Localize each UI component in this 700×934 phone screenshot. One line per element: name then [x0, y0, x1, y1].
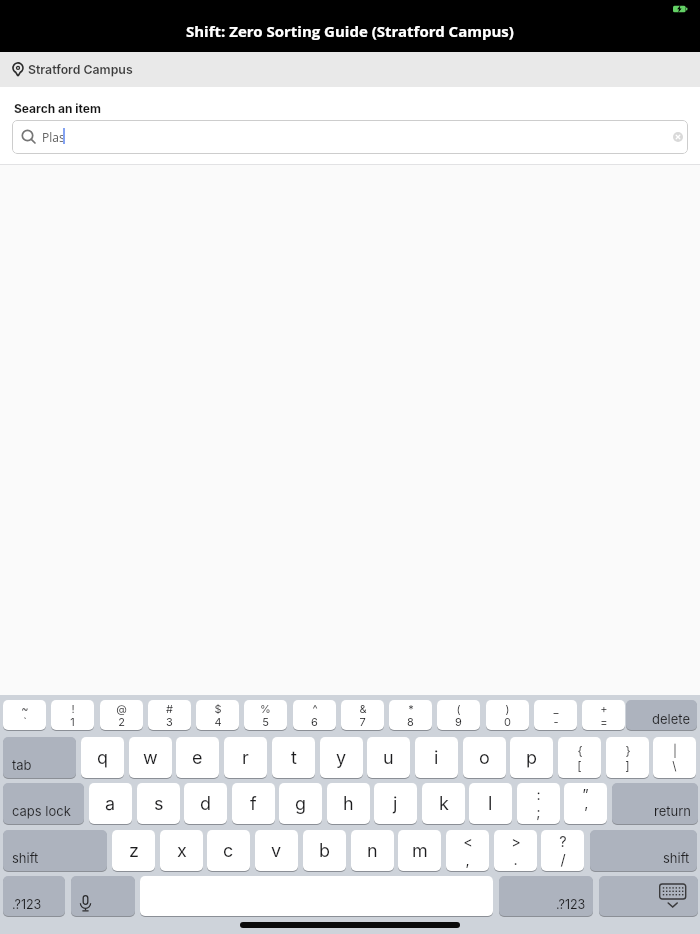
staticText: Plas	[42, 129, 65, 145]
staticText: /	[560, 851, 566, 869]
button[interactable]: u	[367, 737, 410, 778]
button[interactable]: k	[422, 783, 465, 824]
staticText: &	[359, 702, 367, 715]
button[interactable]: c	[207, 830, 250, 871]
staticText: shift	[12, 850, 39, 866]
button[interactable]: h	[327, 783, 370, 824]
staticText: 0	[504, 715, 511, 728]
button[interactable]: j	[374, 783, 417, 824]
button[interactable]: Plas	[12, 120, 688, 154]
staticText: v	[271, 840, 282, 862]
button[interactable]: |	[653, 737, 696, 778]
button[interactable]: ?	[541, 830, 584, 871]
button[interactable]: }	[606, 737, 649, 778]
button[interactable]: z	[112, 830, 155, 871]
button[interactable]: return	[612, 783, 698, 824]
button[interactable]: m	[398, 830, 441, 871]
button[interactable]: <	[446, 830, 489, 871]
button[interactable]: a	[89, 783, 132, 824]
staticText: *	[408, 702, 414, 715]
staticText: #	[166, 702, 173, 715]
button[interactable]: w	[129, 737, 172, 778]
button[interactable]: @	[100, 700, 143, 730]
staticText: -	[553, 715, 559, 728]
staticText: ;	[536, 804, 541, 822]
button[interactable]	[599, 876, 698, 916]
staticText: {	[577, 743, 583, 758]
button[interactable]: %	[244, 700, 287, 730]
button[interactable]: x	[160, 830, 203, 871]
button[interactable]: .?123	[499, 876, 593, 916]
button[interactable]: f	[232, 783, 275, 824]
staticText: z	[129, 840, 139, 862]
button[interactable]: caps lock	[3, 783, 84, 824]
staticText: ^	[312, 702, 318, 715]
button[interactable]: t	[272, 737, 315, 778]
button[interactable]: y	[320, 737, 363, 778]
button[interactable]: {	[558, 737, 601, 778]
button[interactable]: b	[303, 830, 346, 871]
staticText: j	[393, 793, 398, 815]
button[interactable]: q	[81, 737, 124, 778]
staticText: \	[672, 758, 677, 773]
staticText: ]	[625, 758, 630, 773]
staticText: y	[336, 747, 347, 769]
button[interactable]: .?123	[3, 876, 65, 916]
button[interactable]	[71, 876, 135, 916]
button[interactable]: ”	[564, 783, 607, 824]
staticText: d	[200, 793, 212, 815]
staticText: 6	[311, 715, 318, 728]
button[interactable]: delete	[626, 700, 697, 730]
button[interactable]: shift	[590, 830, 697, 871]
staticText: 5	[262, 715, 269, 728]
button[interactable]: v	[255, 830, 298, 871]
button[interactable]	[673, 132, 683, 142]
button[interactable]: )	[486, 700, 529, 730]
staticText: Stratford Campus	[28, 62, 133, 77]
staticText: u	[383, 747, 394, 769]
staticText: e	[192, 747, 203, 769]
button[interactable]: ^	[293, 700, 336, 730]
staticText: Search an item	[14, 101, 101, 116]
button[interactable]: n	[351, 830, 394, 871]
button[interactable]: :	[517, 783, 560, 824]
button[interactable]: Stratford Campus	[0, 52, 700, 87]
button[interactable]: !	[51, 700, 94, 730]
button[interactable]: _	[534, 700, 577, 730]
button[interactable]: (	[437, 700, 480, 730]
button[interactable]: o	[463, 737, 506, 778]
button[interactable]: >	[494, 830, 537, 871]
staticText: 2	[118, 715, 125, 728]
button[interactable]: &	[341, 700, 384, 730]
staticText: p	[526, 747, 538, 769]
staticText: 7	[359, 715, 366, 728]
button[interactable]: p	[510, 737, 553, 778]
staticText: +	[600, 702, 608, 715]
staticText: %	[260, 702, 271, 715]
staticText: o	[479, 747, 490, 769]
button[interactable]: *	[389, 700, 432, 730]
staticText: .	[513, 851, 518, 869]
staticText: c	[223, 840, 234, 862]
button[interactable]: s	[137, 783, 180, 824]
button[interactable]: i	[415, 737, 458, 778]
button[interactable]: +	[582, 700, 625, 730]
button[interactable]: l	[469, 783, 512, 824]
staticText: |	[673, 743, 677, 758]
staticText: `	[23, 715, 27, 728]
button[interactable]: tab	[3, 737, 76, 778]
button[interactable]: ~	[3, 700, 46, 730]
staticText: !	[71, 702, 75, 715]
button[interactable]: $	[196, 700, 239, 730]
staticText: .?123	[556, 897, 586, 912]
staticText: g	[295, 793, 307, 815]
button[interactable]: #	[148, 700, 191, 730]
button[interactable]: d	[184, 783, 227, 824]
button[interactable]: g	[279, 783, 322, 824]
button[interactable]: shift	[3, 830, 107, 871]
staticText: (	[456, 702, 461, 715]
staticText: caps lock	[12, 803, 71, 819]
button[interactable]: r	[224, 737, 267, 778]
button[interactable]: e	[176, 737, 219, 778]
